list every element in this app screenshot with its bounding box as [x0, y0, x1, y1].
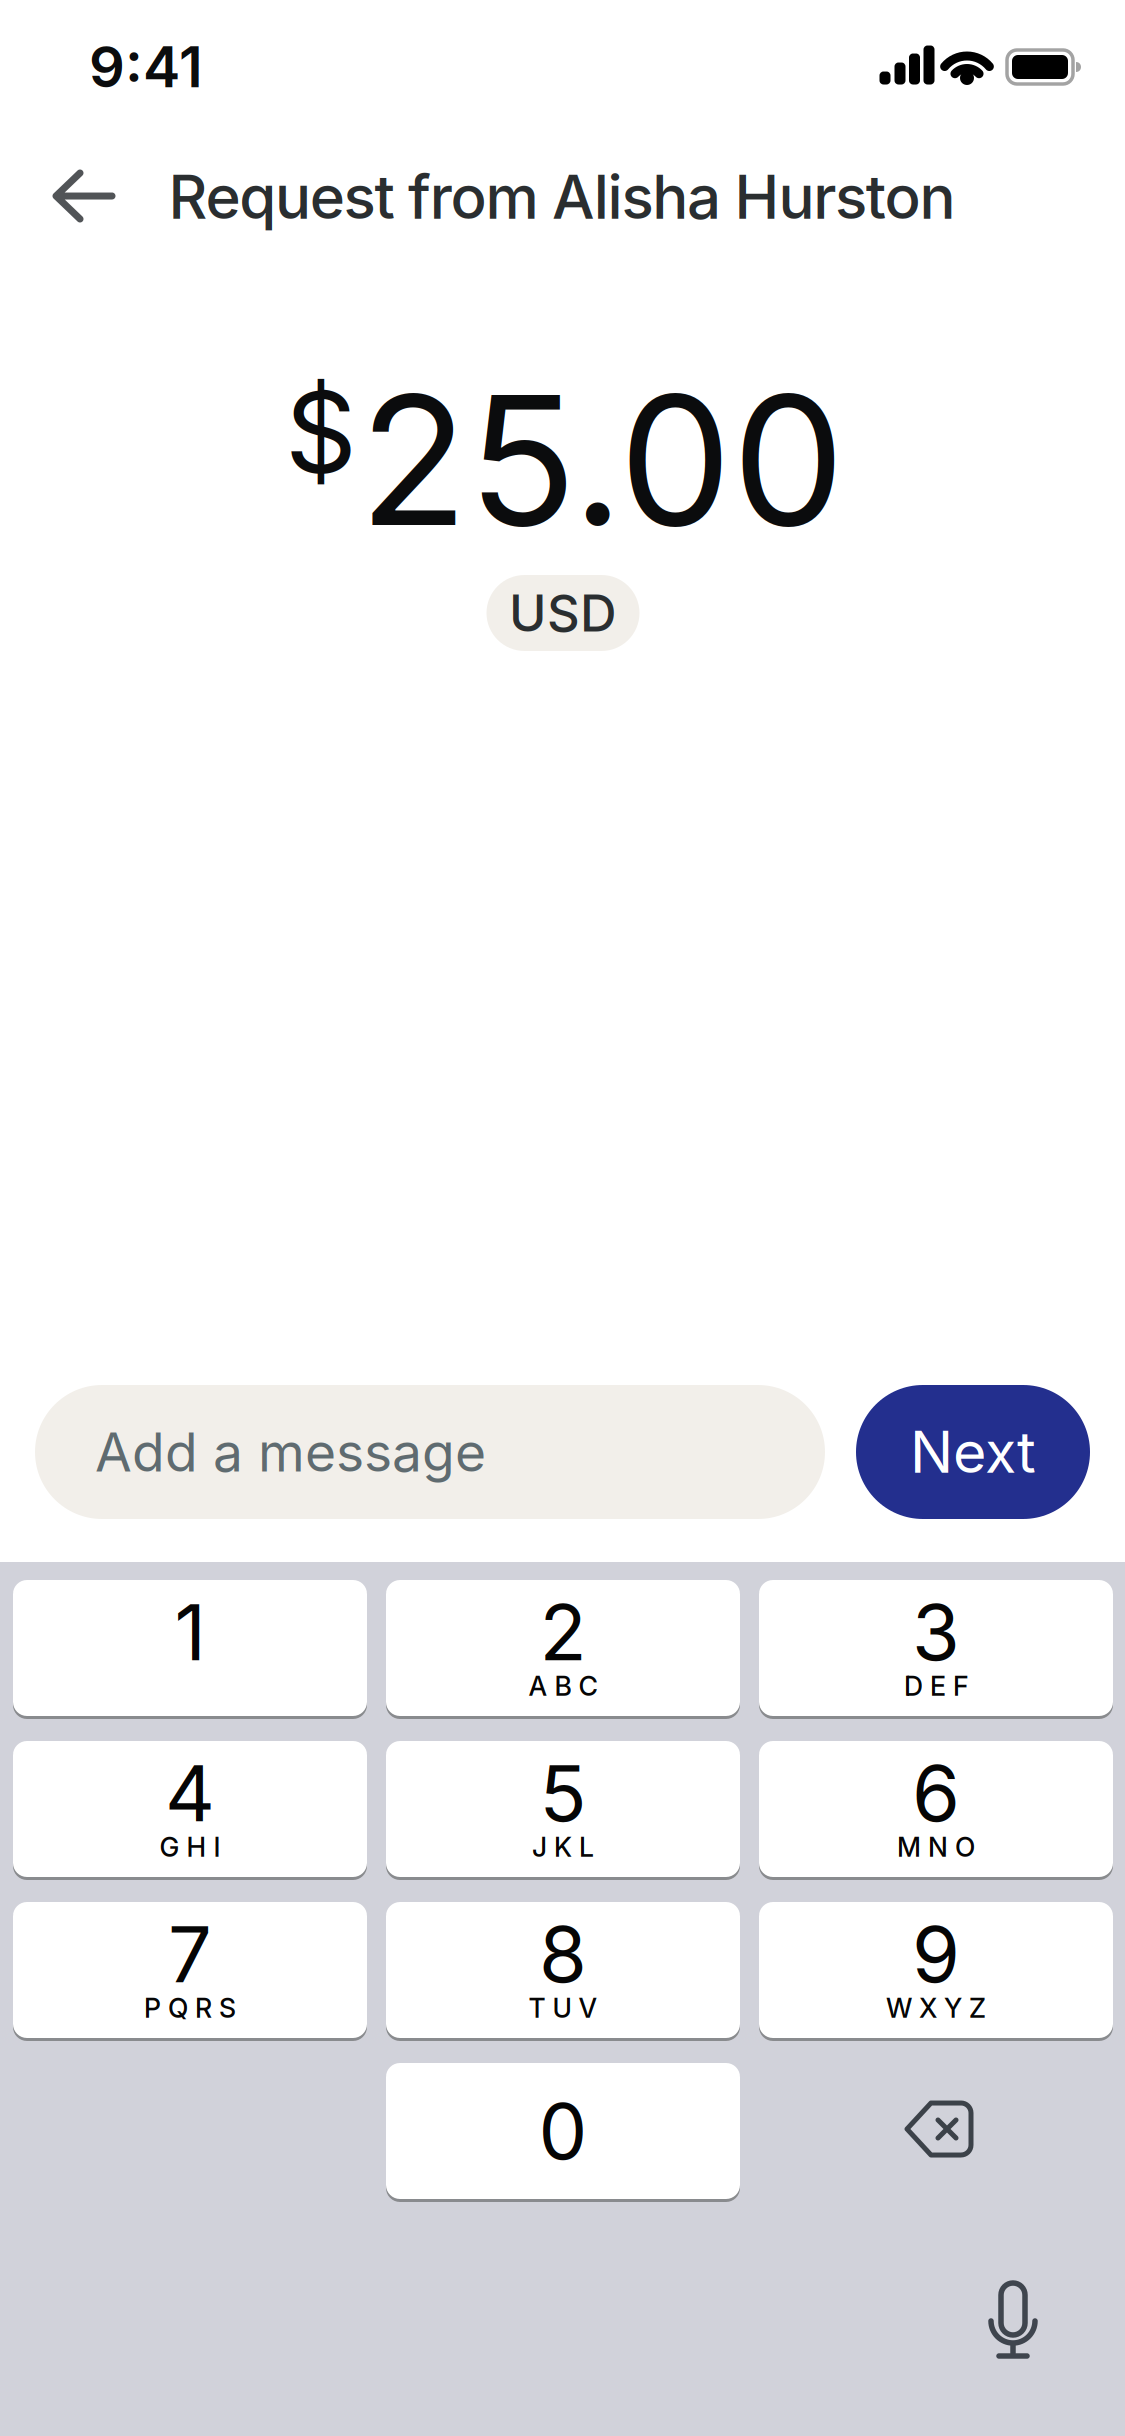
staticText: 4 [165, 1747, 215, 1839]
staticText: Add a message [95, 1420, 486, 1483]
staticText: W X Y Z [886, 1992, 986, 2024]
button[interactable]: 2 [386, 1578, 740, 1718]
button[interactable] [990, 2280, 1036, 2360]
staticText: T U V [528, 1992, 597, 2024]
button[interactable]: Add a message [35, 1385, 825, 1519]
staticText: A B C [528, 1670, 597, 1702]
button[interactable]: 5 [386, 1739, 740, 1879]
button[interactable]: 0 [386, 2061, 740, 2201]
staticText: Request from Alisha Hurston [169, 162, 955, 232]
button[interactable] [905, 2099, 973, 2159]
button[interactable]: Next [856, 1385, 1090, 1519]
staticText: 9 [912, 1908, 960, 2000]
staticText: M N O [897, 1831, 975, 1863]
staticText: 8 [539, 1908, 587, 2000]
button[interactable]: 6 [759, 1739, 1113, 1879]
button[interactable]: 4 [13, 1739, 367, 1879]
staticText: 2 [539, 1586, 586, 1678]
staticText: 0 [538, 2085, 587, 2177]
staticText: 3 [912, 1586, 960, 1678]
staticText: 25.00 [359, 355, 845, 565]
staticText: D E F [904, 1670, 968, 1702]
staticText: 1 [174, 1586, 205, 1678]
staticText: USD [509, 583, 617, 643]
button[interactable]: 9 [759, 1900, 1113, 2040]
staticText: 7 [168, 1908, 212, 2000]
button[interactable]: 7 [13, 1900, 367, 2040]
staticText: J K L [532, 1831, 594, 1863]
staticText: 6 [912, 1747, 960, 1839]
staticText: $ [285, 366, 357, 498]
button[interactable]: 3 [759, 1578, 1113, 1718]
button[interactable] [39, 156, 129, 236]
button[interactable]: 8 [386, 1900, 740, 2040]
button[interactable]: USD [486, 575, 639, 651]
button[interactable]: 1 [13, 1578, 367, 1718]
staticText: Next [910, 1418, 1036, 1486]
staticText: P Q R S [144, 1992, 236, 2024]
staticText: 5 [539, 1747, 586, 1839]
staticText: 9:41 [89, 34, 203, 100]
staticText: G H I [159, 1831, 220, 1863]
